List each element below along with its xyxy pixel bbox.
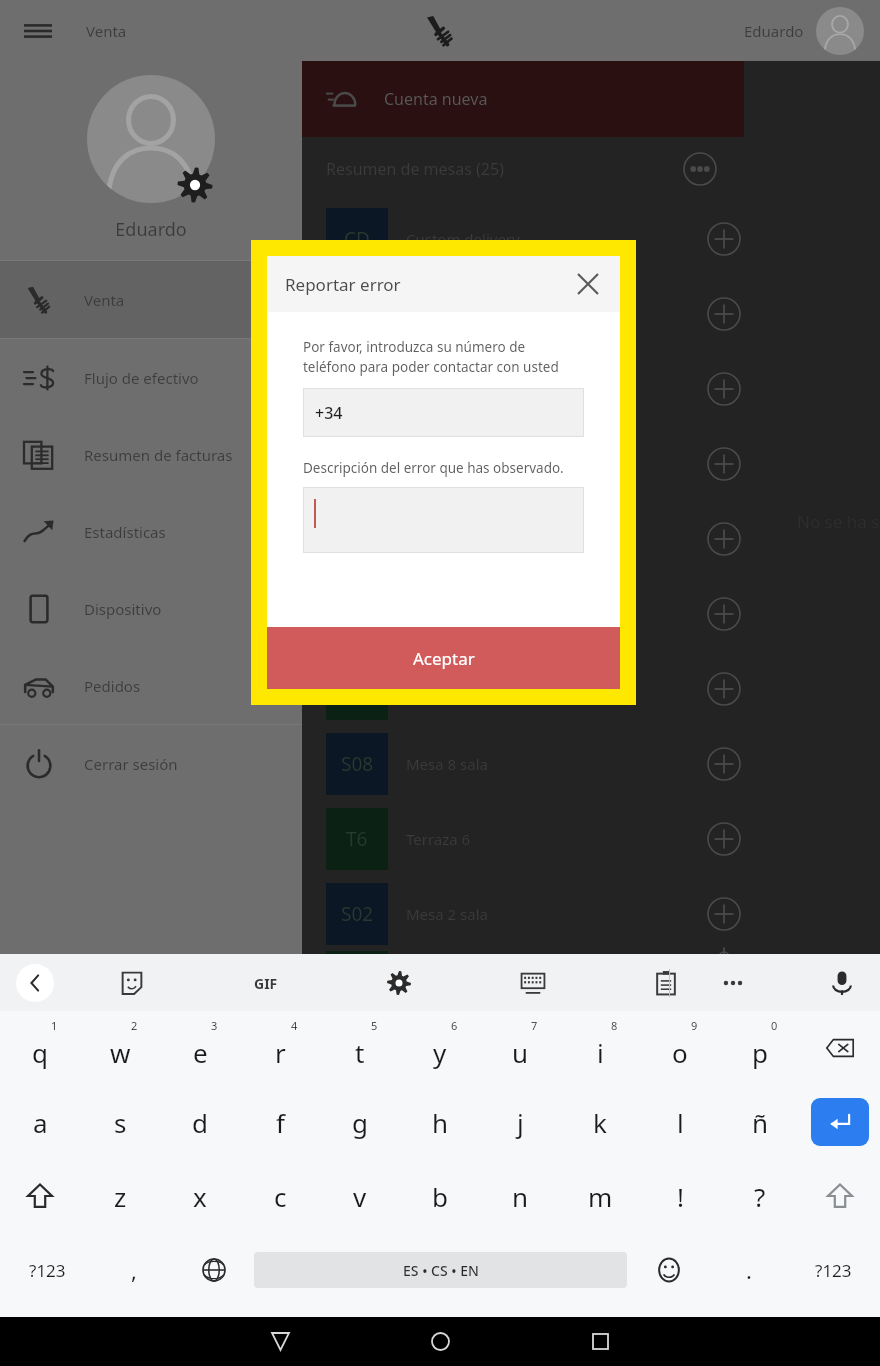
button[interactable]: Language [174, 1233, 254, 1307]
button[interactable]: Emoji [627, 1233, 711, 1307]
button[interactable]: Back [200, 1317, 360, 1366]
button[interactable]: T5 [302, 651, 744, 726]
button[interactable]: Flujo de efectivo [0, 339, 302, 416]
button[interactable]: 5 [320, 1011, 400, 1085]
button[interactable]: T3 [302, 426, 744, 501]
button[interactable]: Add [704, 219, 744, 259]
button[interactable]: Add [704, 744, 744, 784]
button[interactable]: Stickers [110, 961, 154, 1005]
button[interactable] [303, 487, 584, 553]
button[interactable]: Add [704, 819, 744, 859]
staticText: Eduardo [744, 21, 804, 41]
button[interactable]: 3 [160, 1011, 240, 1085]
button[interactable]: 9 [640, 1011, 720, 1085]
button[interactable]: Shift [0, 1159, 80, 1233]
button[interactable]: 0 [720, 1011, 800, 1085]
staticText: Custom delivery [406, 229, 704, 249]
button[interactable]: Add [704, 294, 744, 334]
button[interactable]: d [160, 1085, 240, 1159]
button[interactable]: , [94, 1233, 174, 1307]
staticText: d [192, 1105, 208, 1140]
button[interactable]: S02 [302, 876, 744, 951]
button[interactable]: x [160, 1159, 240, 1233]
button[interactable]: a [0, 1085, 80, 1159]
button[interactable]: Add [704, 951, 744, 963]
button[interactable]: j [480, 1085, 560, 1159]
button[interactable]: T1 [302, 276, 744, 351]
button[interactable]: Dispositivo [0, 570, 302, 647]
button[interactable]: h [400, 1085, 480, 1159]
button[interactable]: Recents [520, 1317, 680, 1366]
button[interactable]: S01 [302, 351, 744, 426]
button[interactable]: T9 [302, 951, 744, 963]
button[interactable]: l [640, 1085, 720, 1159]
button[interactable]: 4 [240, 1011, 320, 1085]
button[interactable]: Back [16, 964, 54, 1002]
staticText: q [32, 1035, 48, 1070]
staticText: Eduardo [0, 217, 302, 242]
button[interactable]: Cuenta nueva [302, 61, 744, 137]
button[interactable]: T6 [302, 801, 744, 876]
button[interactable]: S05 [302, 576, 744, 651]
button[interactable]: ES • CS • EN [254, 1252, 627, 1288]
button[interactable]: Settings [377, 961, 421, 1005]
button[interactable]: S08 [302, 726, 744, 801]
staticText: Estadísticas [84, 522, 166, 542]
button[interactable]: Enter [800, 1085, 880, 1159]
button[interactable]: Home [360, 1317, 520, 1366]
button[interactable]: 7 [480, 1011, 560, 1085]
button[interactable]: 8 [560, 1011, 640, 1085]
button[interactable]: Avatar [87, 75, 215, 203]
button[interactable]: 1 [0, 1011, 80, 1085]
button[interactable]: Add [704, 519, 744, 559]
button[interactable]: GIF [244, 961, 288, 1005]
button[interactable]: Add [704, 444, 744, 484]
button[interactable]: Venta [0, 261, 302, 338]
button[interactable]: Shift [800, 1159, 880, 1233]
button[interactable]: ? [720, 1159, 800, 1233]
button[interactable]: Voice input [820, 961, 864, 1005]
button[interactable]: s [80, 1085, 160, 1159]
button[interactable]: z [80, 1159, 160, 1233]
button[interactable]: Close [568, 264, 608, 304]
button[interactable]: Pedidos [0, 647, 302, 724]
button[interactable]: Add [704, 669, 744, 709]
button[interactable]: Add [704, 369, 744, 409]
button[interactable]: More options [710, 960, 756, 1006]
staticText: j [517, 1105, 524, 1140]
button[interactable]: ?123 [787, 1233, 880, 1307]
button[interactable]: 2 [80, 1011, 160, 1085]
button[interactable]: Estadísticas [0, 493, 302, 570]
button[interactable]: Menu [14, 7, 62, 55]
button[interactable]: Resumen de facturas [0, 416, 302, 493]
button[interactable]: ?123 [0, 1233, 94, 1307]
button[interactable]: More [680, 149, 720, 189]
staticText: Terraza 3 [406, 454, 704, 474]
button[interactable]: Keyboard [511, 961, 555, 1005]
button[interactable]: n [480, 1159, 560, 1233]
button[interactable]: Add [704, 594, 744, 634]
button[interactable]: f [240, 1085, 320, 1159]
button[interactable]: . [711, 1233, 787, 1307]
button[interactable]: k [560, 1085, 640, 1159]
button[interactable]: ! [640, 1159, 720, 1233]
button[interactable]: Profile [816, 7, 864, 55]
button[interactable]: v [320, 1159, 400, 1233]
staticText: Terraza 1 [406, 304, 704, 324]
button[interactable]: Backspace [800, 1011, 880, 1085]
button[interactable]: T4 [302, 501, 744, 576]
button[interactable]: Aceptar [267, 627, 620, 689]
button[interactable]: Clipboard [644, 961, 688, 1005]
staticText: Mesa 1 sala [406, 379, 704, 399]
button[interactable]: Add [704, 894, 744, 934]
button[interactable]: Cerrar sesión [0, 725, 302, 802]
button[interactable]: g [320, 1085, 400, 1159]
button[interactable]: Settings [175, 165, 215, 205]
button[interactable]: ñ [720, 1085, 800, 1159]
button[interactable]: +34 [303, 388, 584, 437]
button[interactable]: b [400, 1159, 480, 1233]
button[interactable]: m [560, 1159, 640, 1233]
button[interactable]: c [240, 1159, 320, 1233]
button[interactable]: 6 [400, 1011, 480, 1085]
button[interactable]: CD [302, 201, 744, 276]
